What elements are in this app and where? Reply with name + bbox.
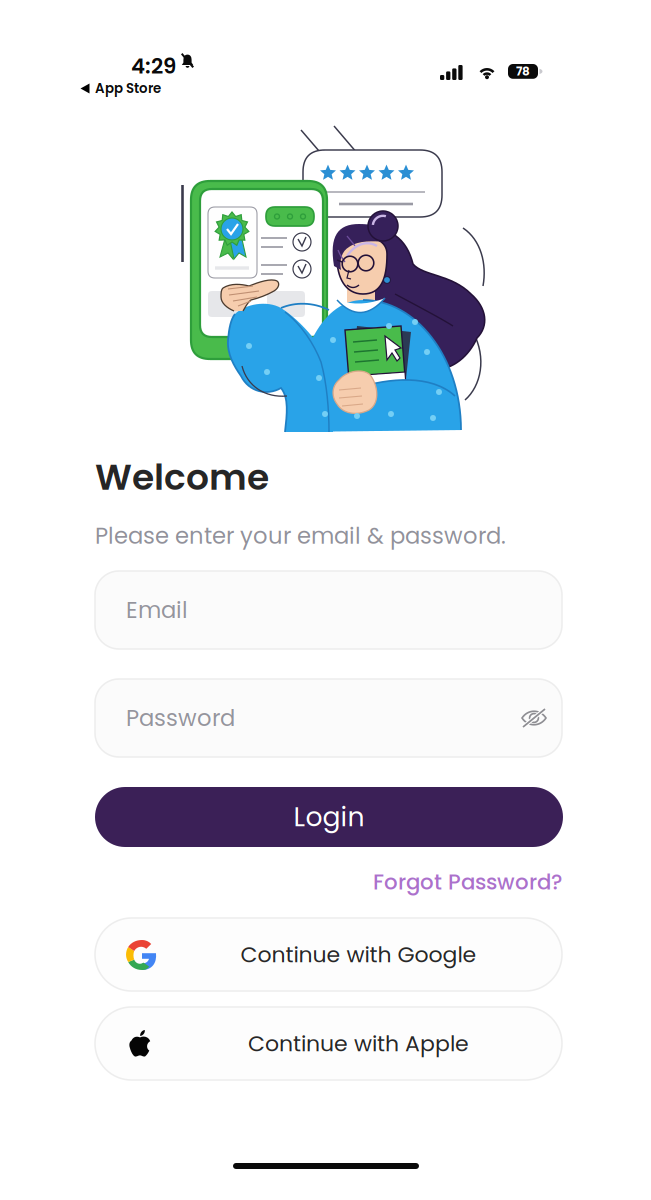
button[interactable]: Show password — [521, 706, 547, 729]
staticText: Continue with Apple — [248, 1028, 469, 1059]
staticText: Email — [126, 594, 188, 626]
staticText: 78 — [516, 63, 530, 80]
staticText: 4:29 — [131, 51, 176, 81]
staticText: Login — [293, 798, 364, 836]
staticText: Welcome — [95, 452, 269, 502]
button[interactable]: Forgot Password? — [373, 867, 562, 897]
button[interactable]: Login — [95, 787, 563, 847]
staticText: App Store — [95, 79, 161, 98]
staticText: Please enter your email & password. — [95, 520, 506, 552]
staticText: Password — [126, 702, 235, 734]
button[interactable]: Email — [95, 571, 562, 649]
staticText: Continue with Google — [240, 939, 476, 970]
button[interactable]: Continue with Apple — [95, 1007, 562, 1080]
button[interactable]: Continue with Google — [95, 918, 562, 991]
button[interactable]: Password — [95, 679, 562, 757]
staticText: Forgot Password? — [373, 867, 562, 897]
